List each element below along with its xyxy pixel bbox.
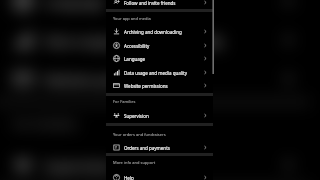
staticText: Language — [124, 56, 146, 62]
button[interactable]: Supervision — [0, 146, 310, 180]
button[interactable]: Archiving and downloading — [106, 25, 213, 38]
button[interactable]: Help — [106, 171, 213, 180]
staticText: For Families — [113, 99, 136, 104]
button[interactable]: Supervision — [106, 109, 213, 122]
staticText: Language — [44, 0, 104, 10]
button[interactable]: Data usage and media quality — [106, 66, 213, 79]
staticText: Supervision — [44, 157, 115, 174]
button[interactable]: Language — [106, 52, 213, 65]
button[interactable]: Website permissions — [106, 79, 213, 92]
staticText: Orders and payments — [124, 145, 170, 151]
button[interactable]: Accessibility — [106, 39, 213, 52]
staticText: Your orders and fundraisers — [113, 132, 166, 137]
staticText: Website permissions — [124, 83, 168, 89]
staticText: Archiving and downloading — [124, 29, 182, 35]
button[interactable]: Orders and payments — [106, 141, 213, 154]
staticText: More info and support — [113, 160, 156, 165]
button[interactable]: Website permissions — [0, 60, 310, 98]
button[interactable]: Follow and invite friends — [106, 0, 213, 9]
button[interactable]: Language — [0, 0, 310, 20]
staticText: Help — [124, 175, 134, 180]
staticText: Accessibility — [124, 43, 150, 49]
staticText: Website permissions — [44, 71, 169, 88]
staticText: Data usage and media quality — [124, 70, 187, 76]
staticText: Supervision — [124, 113, 149, 119]
staticText: Follow and invite friends — [124, 0, 176, 6]
button[interactable]: Data usage and media quality — [0, 21, 310, 59]
staticText: Your app and media — [113, 16, 151, 21]
staticText: Data usage and media quality — [44, 32, 224, 49]
